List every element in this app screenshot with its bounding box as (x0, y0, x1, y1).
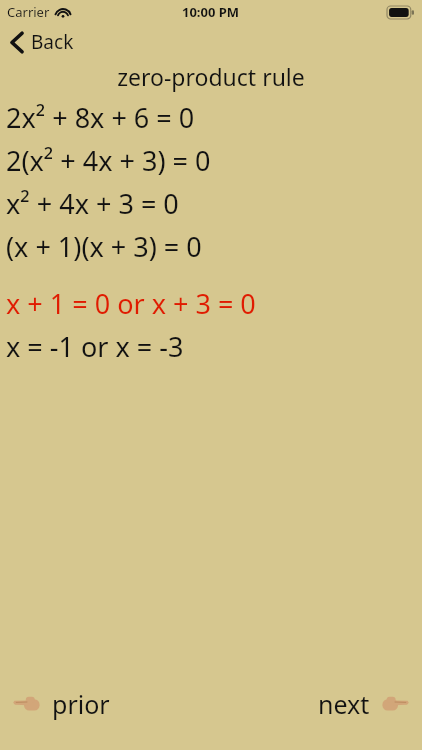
button[interactable]: next (318, 687, 410, 721)
staticText: x² + 4x + 3 = 0 (6, 185, 179, 222)
staticText: next (318, 687, 370, 721)
staticText: Carrier (7, 3, 50, 21)
button[interactable]: Back (10, 24, 74, 60)
staticText: Back (31, 29, 74, 55)
staticText: 2x² + 8x + 6 = 0 (6, 99, 195, 136)
button[interactable]: prior (12, 687, 110, 721)
staticText: 10:00 PM (182, 3, 240, 21)
staticText: (x + 1)(x + 3) = 0 (6, 228, 202, 265)
other: prior (12, 694, 42, 714)
staticText: prior (52, 687, 110, 721)
staticText: zero-product rule (117, 61, 305, 92)
other: next (380, 694, 410, 714)
staticText: 2(x² + 4x + 3) = 0 (6, 142, 211, 179)
staticText: x + 1 = 0 or x + 3 = 0 (6, 285, 256, 322)
staticText: x = -1 or x = -3 (6, 328, 184, 365)
